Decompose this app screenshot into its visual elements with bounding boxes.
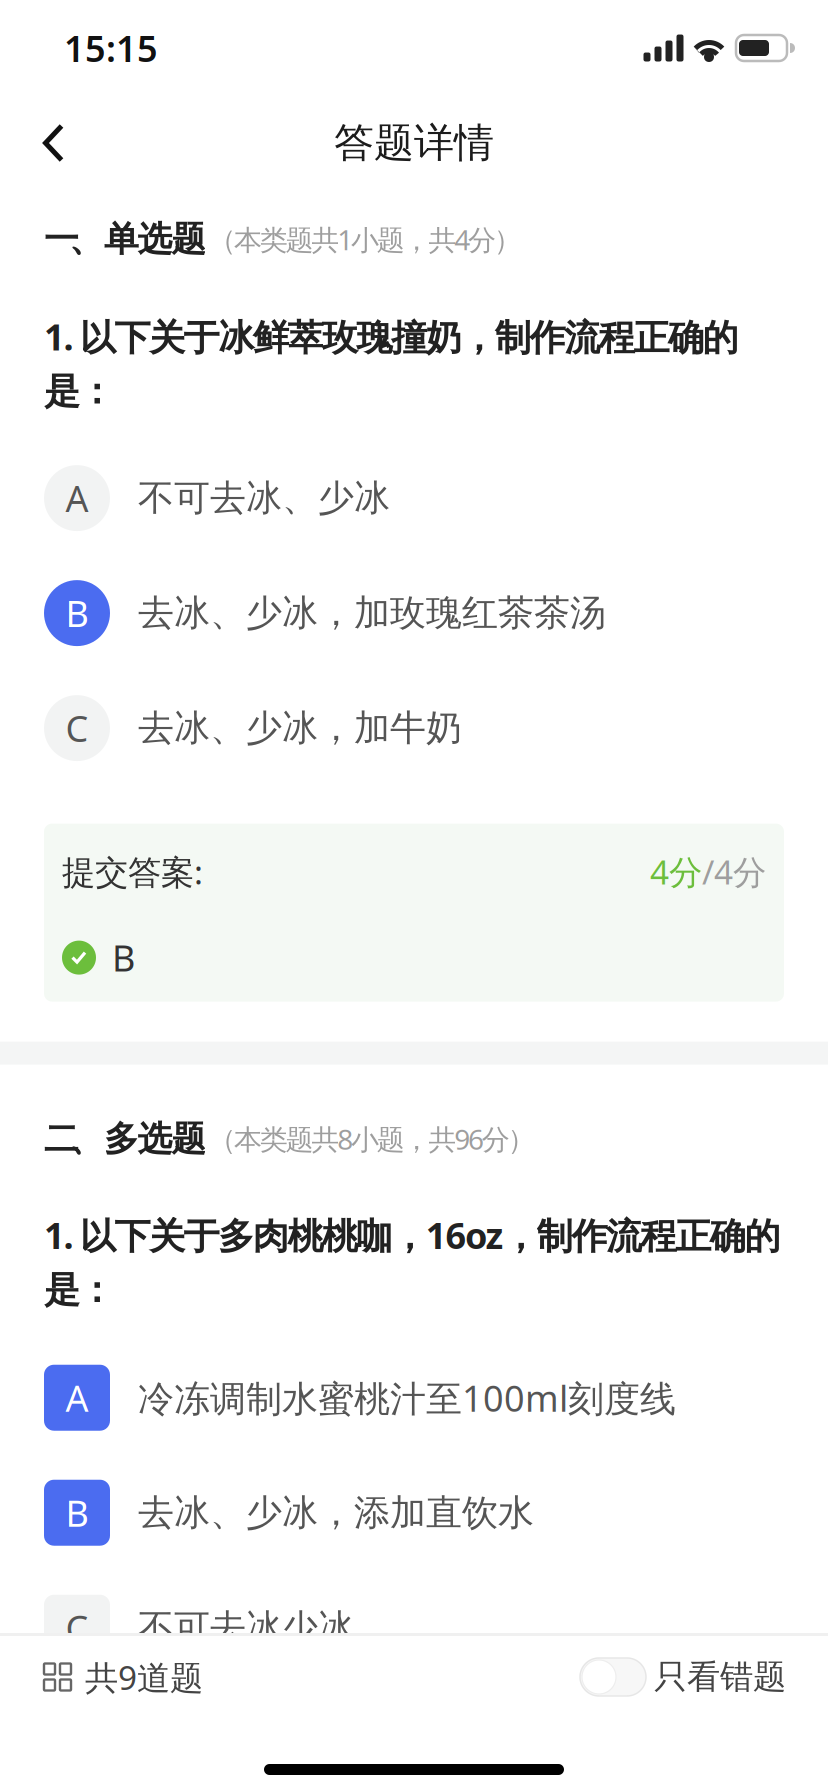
staticText: A — [65, 1374, 88, 1422]
button[interactable]: 共9道题 — [0, 1633, 227, 1721]
staticText: 去冰、少冰，加玫瑰红茶茶汤 — [138, 591, 606, 635]
button[interactable]: B — [0, 556, 828, 671]
staticText: B — [65, 589, 88, 637]
staticText: 15:15 — [64, 24, 158, 72]
staticText: 多选题 — [104, 1118, 206, 1160]
staticText: 只看错题 — [654, 1656, 786, 1697]
staticText: 去冰、少冰，加牛奶 — [138, 706, 462, 750]
staticText: B — [65, 1489, 88, 1537]
staticText: B — [112, 934, 135, 981]
button[interactable]: B — [0, 1455, 828, 1570]
button[interactable]: C — [0, 671, 828, 786]
button[interactable]: 只看错题 — [556, 1633, 828, 1721]
button[interactable]: 返回 — [20, 107, 88, 179]
staticText: 1. 以下关于多肉桃桃咖，16oz，制作流程正确的是： — [44, 1211, 780, 1312]
staticText: /4分 — [702, 849, 766, 894]
staticText: 单选题 — [104, 218, 206, 261]
staticText: 1. 以下关于冰鲜萃玫瑰撞奶，制作流程正确的是： — [44, 313, 739, 414]
staticText: C — [65, 704, 88, 752]
button[interactable]: A — [0, 441, 828, 556]
staticText: 不可去冰、少冰 — [138, 476, 390, 520]
staticText: 共9道题 — [85, 1655, 203, 1699]
button[interactable]: A — [0, 1340, 828, 1455]
staticText: 4分 — [650, 849, 702, 894]
staticText: 答题详情 — [334, 118, 494, 167]
staticText: （本类题共8小题，共96分） — [208, 1120, 536, 1157]
staticText: 二、 — [44, 1118, 104, 1160]
staticText: 冷冻调制水蜜桃汁至100ml刻度线 — [138, 1374, 676, 1422]
staticText: 一、 — [44, 218, 104, 261]
staticText: 去冰、少冰，添加直饮水 — [138, 1491, 534, 1535]
button[interactable]: C — [0, 1570, 828, 1685]
staticText: （本类题共1小题，共4分） — [208, 221, 522, 258]
staticText: A — [65, 474, 88, 522]
staticText: C — [65, 1604, 88, 1652]
staticText: 不可去冰少冰 — [138, 1606, 354, 1650]
staticText: 提交答案: — [62, 849, 203, 894]
